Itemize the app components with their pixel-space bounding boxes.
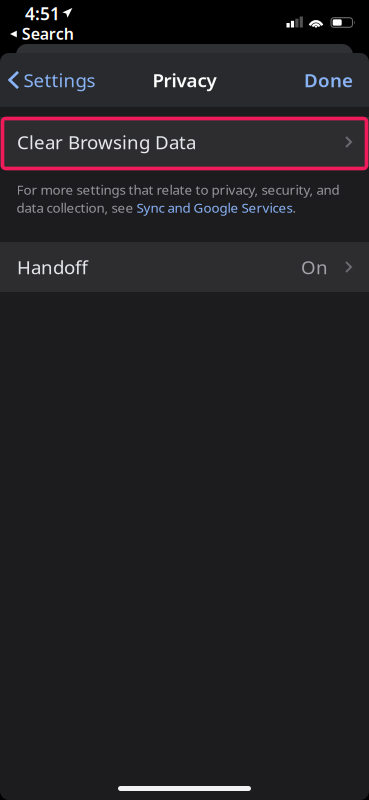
button[interactable]: Clear Browsing Data [0, 117, 369, 167]
staticText: Sync and Google Services [136, 199, 292, 216]
staticText: data collection, see [16, 199, 136, 216]
staticText: Done [304, 68, 353, 92]
button[interactable]: Settings [0, 53, 106, 107]
staticText: Search [22, 23, 74, 44]
staticText: Settings [24, 68, 96, 92]
button[interactable]: Done [290, 53, 369, 107]
staticText: For more settings that relate to privacy… [16, 181, 339, 198]
staticText: Privacy [152, 68, 216, 92]
staticText: Handoff [17, 255, 88, 279]
staticText: On [301, 255, 328, 279]
staticText: 4:51 [25, 2, 60, 25]
button[interactable]: Handoff [0, 242, 369, 292]
staticText: Clear Browsing Data [17, 130, 196, 154]
button[interactable]: Search [10, 24, 74, 46]
staticText: . [292, 199, 296, 216]
button[interactable]: Sync and Google Services [136, 199, 292, 216]
